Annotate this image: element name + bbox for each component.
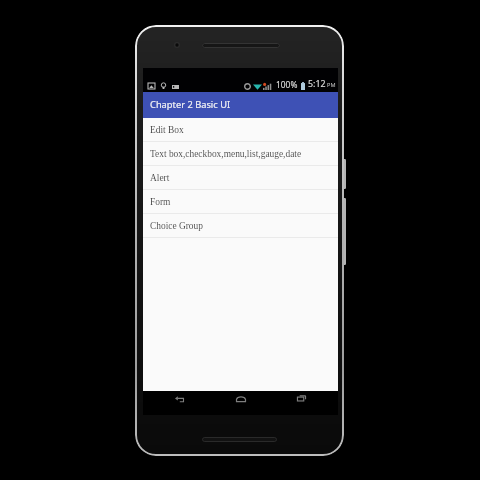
button[interactable]: Alert — [143, 166, 338, 190]
staticText: Choice Group — [150, 221, 203, 231]
staticText: Form — [150, 197, 171, 207]
staticText: Alert — [150, 173, 170, 183]
button[interactable]: Home — [218, 391, 264, 406]
button[interactable]: Edit Box — [143, 118, 338, 142]
staticText: Text box,checkbox,menu,list,gauge,date — [150, 149, 302, 159]
button[interactable]: Recent apps — [278, 391, 324, 406]
button[interactable]: Chapter 2 Basic UI — [143, 92, 338, 118]
button[interactable]: Back — [157, 391, 203, 406]
button[interactable]: Choice Group — [143, 214, 338, 238]
staticText: Chapter 2 Basic UI — [150, 98, 231, 111]
staticText: 5:12 — [308, 78, 326, 90]
staticText: PM — [327, 81, 336, 89]
staticText: 100% — [276, 79, 298, 90]
staticText: Edit Box — [150, 125, 184, 135]
button[interactable]: Text box,checkbox,menu,list,gauge,date — [143, 142, 338, 166]
button[interactable]: Form — [143, 190, 338, 214]
